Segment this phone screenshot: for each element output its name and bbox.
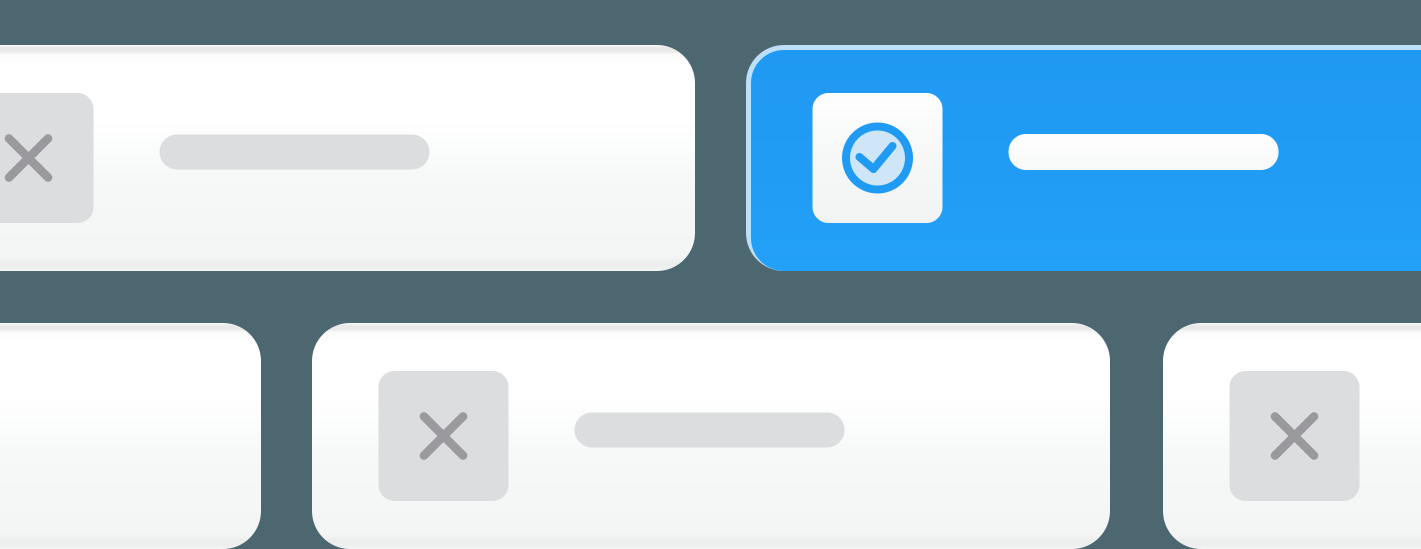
- button[interactable]: [312, 323, 1110, 549]
- button[interactable]: [1163, 323, 1421, 549]
- button[interactable]: Completed: [812, 93, 942, 223]
- button[interactable]: [0, 45, 695, 271]
- button[interactable]: [746, 45, 1421, 271]
- button[interactable]: [0, 323, 261, 549]
- button[interactable]: Dismiss: [1229, 371, 1359, 501]
- button[interactable]: Dismiss: [378, 371, 508, 501]
- button[interactable]: Dismiss: [0, 93, 93, 223]
